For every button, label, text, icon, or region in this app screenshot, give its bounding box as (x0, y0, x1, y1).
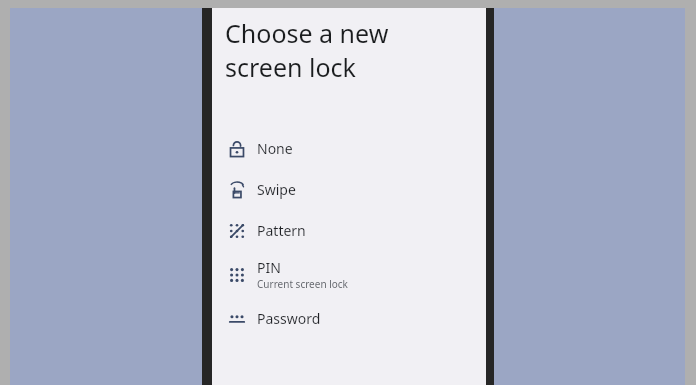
staticText: Swipe (257, 180, 296, 199)
staticText: Current screen lock (257, 277, 348, 291)
button[interactable]: PIN (212, 251, 486, 298)
other: None (226, 138, 248, 160)
button[interactable]: None (212, 128, 486, 169)
button[interactable]: Pattern (212, 210, 486, 251)
other: PIN (226, 264, 248, 286)
button[interactable]: Password (212, 298, 486, 339)
button[interactable]: Swipe (212, 169, 486, 210)
staticText: None (257, 139, 293, 158)
staticText: Password (257, 309, 321, 328)
staticText: Pattern (257, 221, 306, 240)
other: Swipe (226, 179, 248, 201)
staticText: PIN (257, 258, 281, 277)
other: Pattern (226, 220, 248, 242)
other: Password (226, 308, 248, 330)
staticText: Choose a new screen lock (225, 16, 472, 84)
